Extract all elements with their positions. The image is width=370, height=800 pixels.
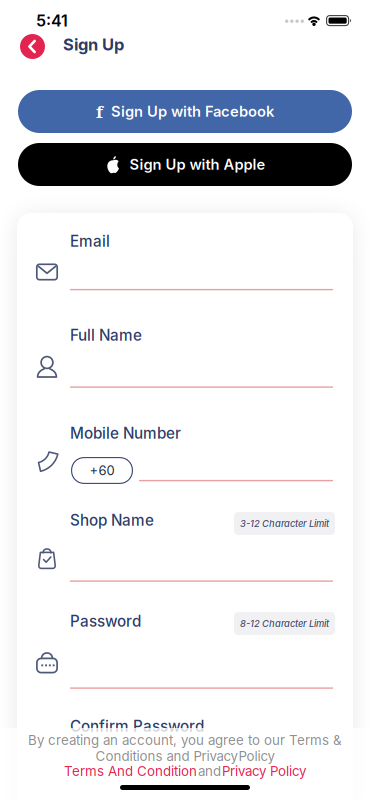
- staticText: Terms And Condition: [64, 763, 197, 779]
- staticText: Conditions and PrivacyPolicy: [95, 748, 274, 764]
- staticText: Privacy Policy: [222, 763, 306, 779]
- staticText: Sign Up: [63, 34, 124, 54]
- staticText: Full Name: [70, 326, 142, 344]
- staticText: 8-12 Character Limit: [240, 618, 329, 629]
- staticText: Shop Name: [70, 511, 154, 529]
- button[interactable]: Privacy Policy: [222, 763, 306, 779]
- button[interactable]: Sign Up with Apple: [18, 143, 352, 186]
- staticText: +60: [89, 463, 114, 478]
- staticText: Confirm Password: [70, 717, 204, 735]
- staticText: f: [96, 100, 103, 123]
- staticText: 3-12 Character Limit: [240, 518, 329, 529]
- staticText: Email: [70, 232, 110, 250]
- staticText: Sign Up with Facebook: [111, 103, 274, 120]
- staticText: 5:41: [36, 11, 68, 30]
- staticText: Mobile Number: [70, 424, 181, 442]
- staticText: By creating an account, you agree to our…: [28, 732, 342, 748]
- staticText: Sign Up with Apple: [129, 156, 265, 173]
- button[interactable]: f: [18, 90, 352, 133]
- staticText: Password: [70, 612, 141, 630]
- button[interactable]: Terms And Condition: [64, 763, 197, 779]
- staticText: and: [198, 763, 221, 779]
- button[interactable]: [20, 34, 45, 59]
- button[interactable]: +60: [71, 457, 133, 484]
